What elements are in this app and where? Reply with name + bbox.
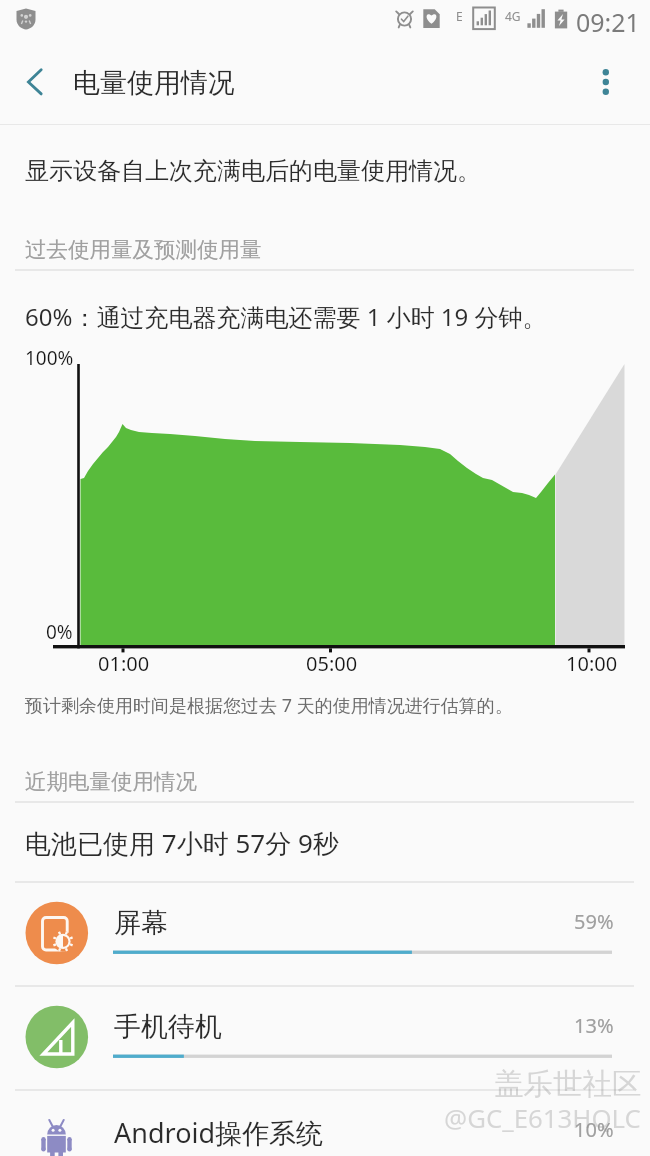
staticText: 过去使用量及预测使用量	[25, 236, 262, 263]
staticText: 09:21	[576, 5, 640, 39]
staticText: E	[456, 8, 463, 24]
staticText: 屏幕	[114, 906, 168, 940]
staticText: 10:00	[566, 650, 618, 677]
staticText: 4G	[505, 8, 521, 24]
button[interactable]: 手机待机	[0, 985, 650, 1089]
staticText: 100%	[25, 345, 74, 371]
staticText: 0%	[46, 619, 73, 645]
staticText: 电池已使用 7小时 57分 9秒	[25, 825, 339, 861]
staticText: 预计剩余使用时间是根据您过去 7 天的使用情况进行估算的。	[25, 693, 513, 718]
button[interactable]: Back	[7, 55, 67, 115]
button[interactable]: Android操作系统	[0, 1089, 650, 1156]
staticText: 60%：通过充电器充满电还需要 1 小时 19 分钟。	[25, 300, 547, 333]
button[interactable]: 屏幕	[0, 881, 650, 985]
button[interactable]: More options	[586, 57, 626, 97]
staticText: 05:00	[306, 650, 358, 677]
staticText: 13%	[574, 1012, 614, 1039]
staticText: 01:00	[98, 650, 150, 677]
staticText: @GC_E613HQLC	[444, 1100, 641, 1135]
staticText: 手机待机	[114, 1010, 222, 1044]
staticText: 10%	[574, 1116, 614, 1143]
staticText: 显示设备自上次充满电后的电量使用情况。	[25, 156, 481, 186]
staticText: 59%	[574, 908, 614, 935]
staticText: 电量使用情况	[73, 66, 235, 100]
staticText: Android操作系统	[114, 1114, 324, 1151]
staticText: 盖乐世社区	[494, 1066, 642, 1103]
staticText: 近期电量使用情况	[25, 768, 197, 795]
